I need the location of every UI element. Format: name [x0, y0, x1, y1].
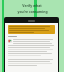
button[interactable] — [8, 25, 55, 34]
button[interactable]: Source app icon — [4, 17, 59, 72]
button[interactable]: Verify what — [5, 3, 59, 14]
staticText: you're consuming — [17, 9, 48, 14]
button[interactable]: Source app icon — [8, 39, 12, 43]
staticText: Verify what — [22, 3, 42, 8]
